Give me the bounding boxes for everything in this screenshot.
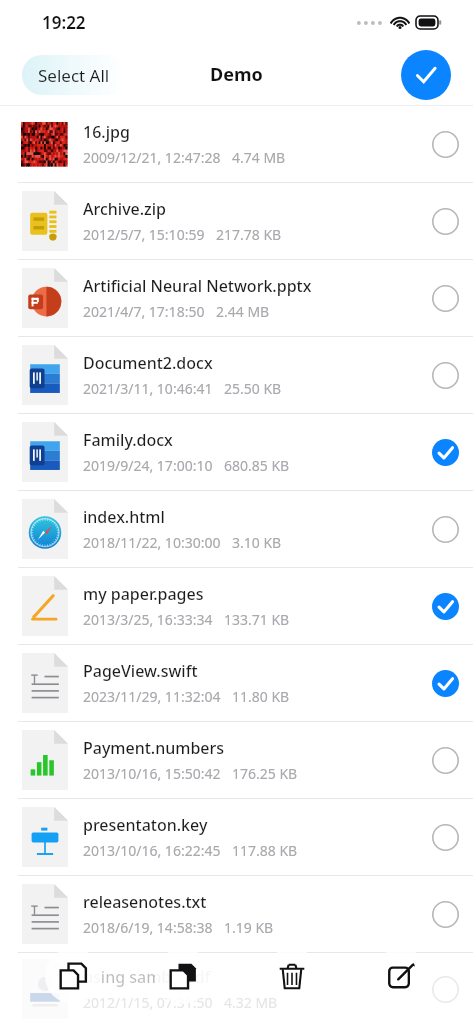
button[interactable]: presentaton.key <box>0 799 473 875</box>
staticText: presentaton.key <box>83 814 208 836</box>
button[interactable]: PageView.swift <box>0 645 473 721</box>
button[interactable]: Move <box>155 948 211 1004</box>
staticText: Document2.docx <box>83 352 213 374</box>
staticText: Demo <box>210 62 263 87</box>
button[interactable]: Delete <box>264 948 320 1004</box>
button[interactable]: Confirm selection <box>401 50 451 100</box>
button[interactable]: Not selected <box>417 886 473 942</box>
staticText: index.html <box>83 506 165 528</box>
button[interactable]: Payment.numbers <box>0 722 473 798</box>
staticText: using samba.pdf <box>83 966 211 988</box>
staticText: Family.docx <box>83 429 173 451</box>
staticText: 2012/1/15, 07:31:50 <box>83 993 213 1012</box>
button[interactable]: Not selected <box>417 116 473 172</box>
staticText: 2013/3/25, 16:33:34 <box>83 610 213 629</box>
staticText: 117.88 KB <box>232 841 298 860</box>
staticText: 2018/11/22, 10:30:00 <box>83 533 221 552</box>
button[interactable]: Not selected <box>417 809 473 865</box>
staticText: 680.85 KB <box>224 456 290 475</box>
staticText: 2021/3/11, 10:46:41 <box>83 379 213 398</box>
staticText: 2013/10/16, 15:50:42 <box>83 764 221 783</box>
button[interactable]: Not selected <box>417 347 473 403</box>
staticText: 2009/12/21, 12:47:28 <box>83 148 221 167</box>
staticText: Select All <box>38 64 110 87</box>
staticText: 4.32 MB <box>224 993 278 1012</box>
staticText: 176.25 KB <box>232 764 298 783</box>
button[interactable]: Family.docx <box>0 414 473 490</box>
button[interactable]: Copy <box>45 948 101 1004</box>
button[interactable]: Archive.zip <box>0 183 473 259</box>
button[interactable]: Select All <box>22 55 126 95</box>
staticText: 2.44 MB <box>216 302 270 321</box>
staticText: 3.10 KB <box>232 533 282 552</box>
staticText: 133.71 KB <box>224 610 290 629</box>
button[interactable]: Selected <box>417 578 473 634</box>
staticText: 217.78 KB <box>216 225 282 244</box>
button[interactable]: Artificial Neural Network.pptx <box>0 260 473 336</box>
button[interactable]: Not selected <box>417 193 473 249</box>
button[interactable]: Not selected <box>417 501 473 557</box>
staticText: 2013/10/16, 16:22:45 <box>83 841 221 860</box>
button[interactable]: Selected <box>417 424 473 480</box>
staticText: my paper.pages <box>83 583 204 605</box>
button[interactable]: using samba.pdf <box>0 953 473 1024</box>
button[interactable]: index.html <box>0 491 473 567</box>
button[interactable]: Document2.docx <box>0 337 473 413</box>
staticText: 19:22 <box>42 11 86 34</box>
button[interactable]: Not selected <box>417 732 473 788</box>
button[interactable]: releasenotes.txt <box>0 876 473 952</box>
staticText: 2023/11/29, 11:32:04 <box>83 687 221 706</box>
staticText: 1.19 KB <box>224 918 274 937</box>
button[interactable]: Not selected <box>417 270 473 326</box>
staticText: 11.80 KB <box>232 687 290 706</box>
button[interactable]: 16.jpg <box>0 106 473 182</box>
staticText: 2019/9/24, 17:00:10 <box>83 456 213 475</box>
staticText: PageView.swift <box>83 660 198 682</box>
staticText: Archive.zip <box>83 198 166 220</box>
staticText: releasenotes.txt <box>83 891 207 913</box>
staticText: 2018/6/19, 14:58:38 <box>83 918 213 937</box>
staticText: 4.74 MB <box>232 148 286 167</box>
staticText: 2012/5/7, 15:10:59 <box>83 225 205 244</box>
staticText: Artificial Neural Network.pptx <box>83 275 312 297</box>
staticText: 2021/4/7, 17:18:50 <box>83 302 205 321</box>
staticText: Payment.numbers <box>83 737 225 759</box>
button[interactable]: Selected <box>417 655 473 711</box>
staticText: 16.jpg <box>83 121 130 143</box>
button[interactable]: Rename <box>373 948 429 1004</box>
button[interactable]: my paper.pages <box>0 568 473 644</box>
button[interactable]: Not selected <box>417 961 473 1017</box>
staticText: 25.50 KB <box>224 379 282 398</box>
